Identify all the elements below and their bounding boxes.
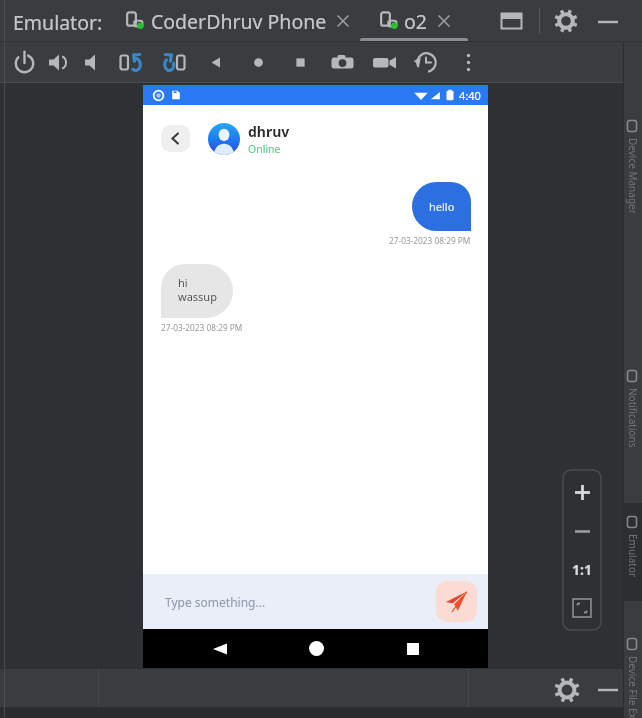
staticText: dhruv xyxy=(248,122,290,141)
button[interactable]: More xyxy=(451,42,485,83)
button[interactable]: CoderDhruv Phone xyxy=(126,4,351,38)
staticText: hi wassup xyxy=(178,275,217,304)
button[interactable]: Actual size xyxy=(565,552,599,586)
button[interactable]: Screenshot xyxy=(325,42,359,83)
staticText: 4:40 xyxy=(459,88,481,103)
staticText: Emulator: xyxy=(13,9,103,36)
staticText: o2 xyxy=(404,8,427,35)
button[interactable]: Home xyxy=(241,42,275,83)
button[interactable]: o2 xyxy=(380,4,452,38)
button[interactable] xyxy=(624,366,642,466)
staticText: CoderDhruv Phone xyxy=(151,8,327,35)
button[interactable]: Back xyxy=(161,125,190,152)
staticText: Device Manager xyxy=(626,138,640,214)
button[interactable]: Restore window xyxy=(500,10,523,33)
button[interactable]: Send xyxy=(436,581,477,622)
staticText: Type something... xyxy=(165,594,266,610)
button[interactable]: Home xyxy=(292,629,340,668)
button[interactable]: Settings xyxy=(555,10,577,32)
button[interactable]: Close tab xyxy=(335,13,351,29)
button[interactable]: Back xyxy=(196,629,244,668)
staticText: Device File Explorer xyxy=(626,656,640,718)
staticText: 27-03-2023 08:29 PM xyxy=(161,322,243,333)
button[interactable]: hi wassup xyxy=(161,264,233,318)
staticText: hello xyxy=(429,199,455,214)
button[interactable]: Volume down xyxy=(77,42,111,83)
button[interactable]: Settings xyxy=(555,678,579,702)
button[interactable]: Minimize xyxy=(596,678,620,702)
button[interactable]: Back xyxy=(199,42,233,83)
staticText: 1:1 xyxy=(572,560,592,579)
button[interactable]: Close tab xyxy=(436,13,452,29)
button[interactable] xyxy=(624,512,642,588)
staticText: 27-03-2023 08:29 PM xyxy=(389,235,471,246)
button[interactable]: hello xyxy=(412,182,471,231)
button[interactable]: Rotate left xyxy=(114,42,148,83)
button[interactable]: Minimize xyxy=(596,10,620,34)
button[interactable]: History xyxy=(409,42,443,83)
button[interactable]: Overview xyxy=(283,42,317,83)
button[interactable]: Power xyxy=(7,42,41,83)
staticText: Emulator xyxy=(626,534,640,578)
button[interactable]: Rotate right xyxy=(156,42,190,83)
button[interactable]: Volume up xyxy=(41,42,75,83)
button[interactable]: Zoom in xyxy=(565,475,599,509)
staticText: Online xyxy=(248,142,281,156)
staticText: Notifications xyxy=(626,388,640,448)
button[interactable]: Recents xyxy=(389,629,437,668)
button[interactable]: Zoom out xyxy=(565,514,599,548)
button[interactable] xyxy=(624,634,642,718)
button[interactable] xyxy=(624,116,642,222)
button[interactable]: Fit to screen xyxy=(565,591,599,625)
button[interactable]: Record xyxy=(367,42,401,83)
